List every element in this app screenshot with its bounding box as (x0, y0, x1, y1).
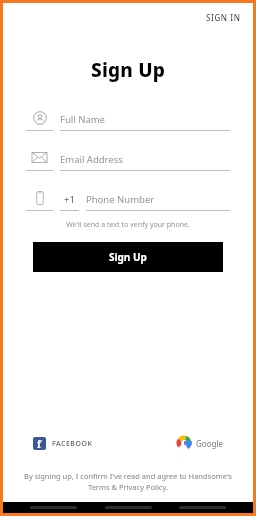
staticText: We'll send a text to verify your phone. (3, 220, 253, 230)
staticText: f (37, 437, 42, 450)
button[interactable]: Email address (3, 149, 253, 171)
staticText: SIGN IN (206, 12, 241, 23)
staticText: Full Name (60, 113, 105, 126)
other: Phone (26, 189, 53, 211)
button[interactable]: Phone (3, 189, 253, 211)
staticText: +1 (60, 193, 79, 206)
other: Full name (26, 109, 53, 131)
button[interactable]: Sign Up (33, 242, 223, 272)
button[interactable]: By signing up, I confirm I've read and a… (3, 471, 253, 492)
button[interactable]: f (29, 433, 97, 454)
button[interactable]: SIGN IN (194, 8, 253, 27)
other: Email address (26, 149, 53, 171)
staticText: Sign Up (109, 250, 147, 264)
button[interactable]: Google (172, 431, 227, 455)
staticText: By signing up, I confirm I've read and a… (19, 471, 237, 492)
button[interactable]: Full name (3, 109, 253, 131)
staticText: FACEBOOK (52, 439, 93, 449)
staticText: Phone Number (86, 193, 155, 206)
staticText: Sign Up (3, 57, 253, 83)
staticText: Email Address (60, 153, 123, 166)
staticText: Google (196, 438, 223, 449)
